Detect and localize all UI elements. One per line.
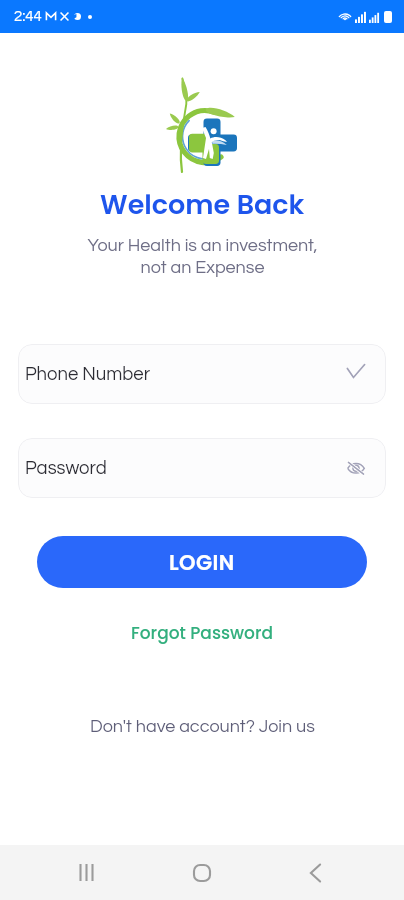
staticText: Welcome Back (100, 186, 305, 224)
staticText: Phone Number (25, 365, 151, 384)
other: Valid (347, 364, 365, 378)
staticText: Your Health is an investment, not an Exp… (87, 236, 318, 276)
button[interactable]: Don't have account? Join us (80, 713, 325, 740)
button[interactable]: Recent apps (56, 845, 116, 900)
other: Show password (347, 461, 365, 475)
button[interactable]: Forgot Password (121, 617, 283, 649)
staticText: Password (25, 459, 107, 478)
button[interactable]: Password (18, 438, 386, 498)
button[interactable]: Phone Number (18, 344, 386, 404)
staticText: 2:44 (14, 9, 42, 24)
button[interactable]: Home (172, 845, 232, 900)
staticText: LOGIN (169, 548, 235, 577)
staticText: Forgot Password (131, 621, 273, 645)
staticText: Don't have account? Join us (90, 717, 315, 736)
button[interactable]: Back (288, 845, 348, 900)
button[interactable]: LOGIN (37, 536, 367, 588)
